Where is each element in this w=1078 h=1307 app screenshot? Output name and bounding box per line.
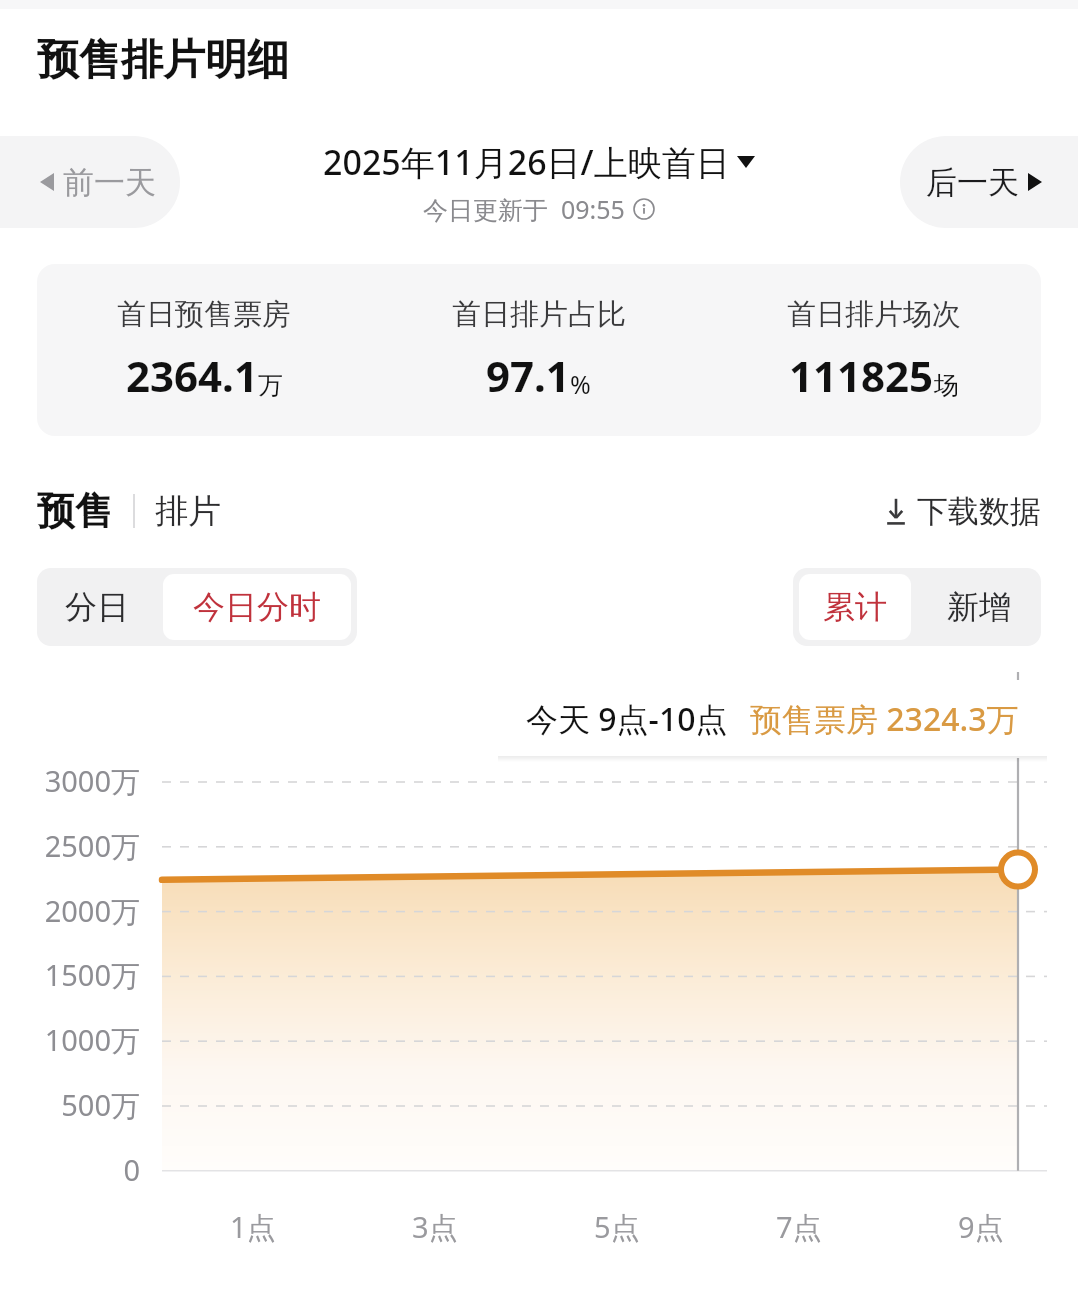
staticText: 500万 [61,1085,140,1125]
staticText: 3点 [412,1207,458,1247]
staticText: 预售 [37,487,113,535]
button[interactable]: 排片 [155,490,221,532]
staticText: 今日更新于 09:55 [423,192,625,226]
staticText: 排片 [155,490,221,532]
staticText: 新增 [947,587,1011,627]
staticText: 5点 [594,1207,640,1247]
staticText: 首日排片场次 [787,296,961,333]
staticText: 今天 9点-10点 [526,697,728,741]
button[interactable]: 后一天 [900,136,1078,228]
button[interactable]: 今日分时 [163,574,351,640]
staticText: 场 [934,370,959,401]
staticText: 下载数据 [917,492,1041,531]
staticText: 1点 [230,1207,276,1247]
staticText: 首日预售票房 [117,296,291,333]
staticText: 分日 [65,587,129,627]
staticText: 后一天 [926,163,1019,202]
staticText: 首日排片占比 [452,296,626,333]
staticText: 2364.1 [126,347,258,404]
staticText: 万 [258,370,283,401]
button[interactable]: 累计 [799,574,911,640]
button[interactable]: 下载数据 [883,492,1041,531]
staticText: 3000万 [44,761,140,801]
staticText: 97.1 [486,347,570,404]
button[interactable]: 2025年11月26日/上映首日 [323,139,755,226]
button[interactable]: 今天 9点-10点 [498,680,1047,758]
staticText: 2025年11月26日/上映首日 [323,139,730,185]
staticText: 预售票房 2324.3万 [750,697,1019,741]
button[interactable]: 前一天 [0,136,180,228]
staticText: 预售排片明细 [37,34,289,87]
button[interactable]: 新增 [923,574,1035,640]
staticText: 今日分时 [193,587,321,627]
staticText: 0 [123,1150,140,1189]
staticText: 9点 [958,1207,1004,1247]
staticText: 2500万 [44,826,140,866]
staticText: 7点 [776,1207,822,1247]
staticText: 111825 [789,347,934,404]
staticText: 前一天 [63,163,156,202]
staticText: 2000万 [44,891,140,931]
staticText: % [570,367,591,401]
button[interactable]: 分日 [43,574,151,640]
button[interactable]: 预售 [37,487,113,535]
staticText: 1000万 [44,1020,140,1060]
staticText: 累计 [823,587,887,627]
staticText: 1500万 [44,955,140,995]
